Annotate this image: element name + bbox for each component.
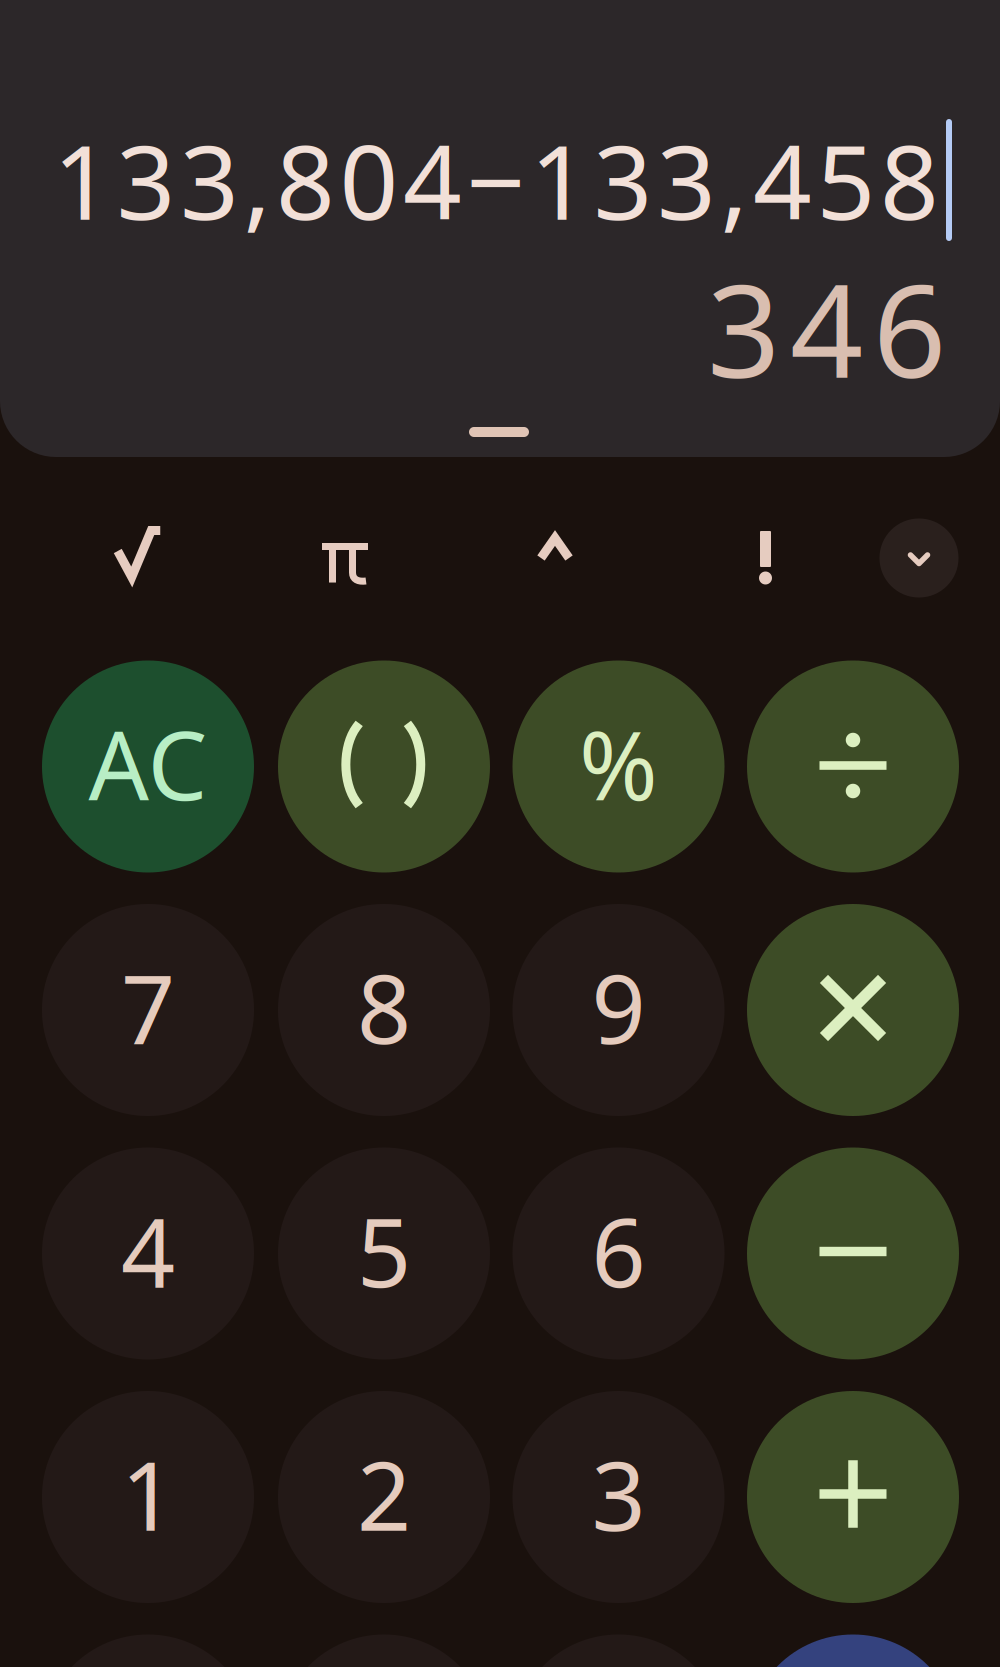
button[interactable]: Parentheses <box>278 660 490 872</box>
button[interactable]: Factorial <box>705 503 825 613</box>
button[interactable]: 2 <box>278 1391 490 1603</box>
button[interactable]: Minus <box>747 1147 959 1359</box>
button[interactable]: 0 <box>42 1634 254 1667</box>
staticText: 1 <box>121 1431 175 1557</box>
button[interactable]: Equals <box>747 1634 959 1667</box>
staticText: 4 <box>121 1188 175 1313</box>
button[interactable]: AC <box>42 660 254 872</box>
button[interactable]: . <box>278 1634 490 1667</box>
staticText: 133,804−133,458 <box>53 112 939 248</box>
staticText: 9 <box>591 944 645 1070</box>
staticText: 346 <box>707 243 946 413</box>
button[interactable]: 4 <box>42 1147 254 1359</box>
button[interactable]: 7 <box>42 904 254 1116</box>
button[interactable]: % <box>512 660 724 872</box>
button[interactable]: Square root <box>79 499 199 609</box>
staticText: 7 <box>121 944 175 1070</box>
button[interactable]: Plus <box>747 1391 959 1603</box>
staticText: 3 <box>591 1431 645 1557</box>
staticText: 2 <box>357 1431 411 1557</box>
staticText: 6 <box>591 1188 645 1313</box>
button[interactable]: Collapse keypad <box>869 508 969 608</box>
staticText: % <box>579 701 658 826</box>
button[interactable]: Pi <box>285 509 405 619</box>
button[interactable]: Exponent <box>495 493 615 603</box>
button[interactable]: 1 <box>42 1391 254 1603</box>
button[interactable]: 8 <box>278 904 490 1116</box>
button[interactable]: 5 <box>278 1147 490 1359</box>
button[interactable]: 3 <box>512 1391 724 1603</box>
button[interactable]: Multiply <box>747 904 959 1116</box>
staticText: 8 <box>357 944 411 1070</box>
button[interactable]: 9 <box>512 904 724 1116</box>
button[interactable]: Delete <box>512 1634 724 1667</box>
button[interactable]: 6 <box>512 1147 724 1359</box>
staticText: 5 <box>357 1188 411 1313</box>
button[interactable]: Divide <box>747 660 959 872</box>
staticText: AC <box>88 701 207 826</box>
